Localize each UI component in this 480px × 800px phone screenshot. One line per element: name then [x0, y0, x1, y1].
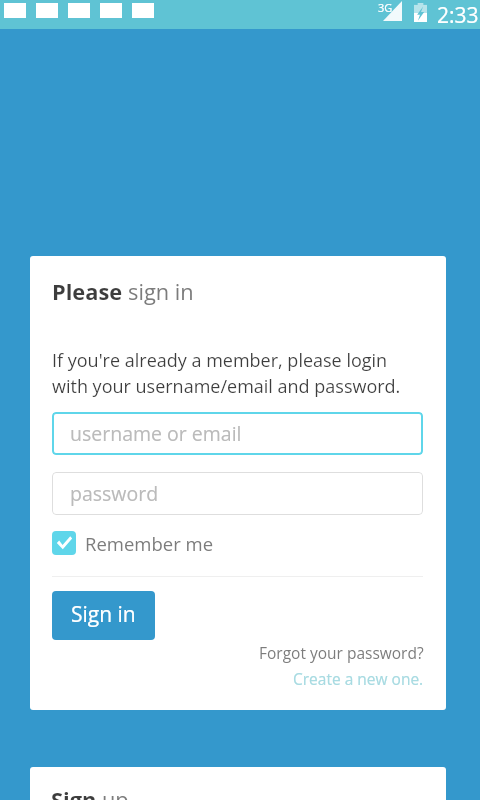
button[interactable]: Create a new one.: [293, 668, 424, 689]
staticText: sign in: [128, 277, 194, 307]
staticText: password: [70, 480, 159, 507]
button[interactable]: password: [52, 472, 423, 515]
staticText: Sign: [51, 785, 102, 800]
button[interactable]: username or email: [52, 412, 423, 455]
button[interactable]: Sign in: [52, 591, 155, 640]
button[interactable]: Forgot your password?: [259, 642, 424, 663]
staticText: 3G: [378, 0, 393, 15]
staticText: Please: [52, 277, 128, 307]
staticText: username or email: [70, 420, 242, 447]
staticText: up: [102, 785, 129, 800]
staticText: 2:33: [437, 1, 479, 30]
other: Battery charging: [414, 3, 427, 22]
button[interactable]: Remember me: [52, 528, 214, 558]
staticText: Sign in: [71, 600, 136, 629]
staticText: Remember me: [85, 531, 214, 556]
staticText: If you're already a member, please login…: [52, 348, 412, 398]
